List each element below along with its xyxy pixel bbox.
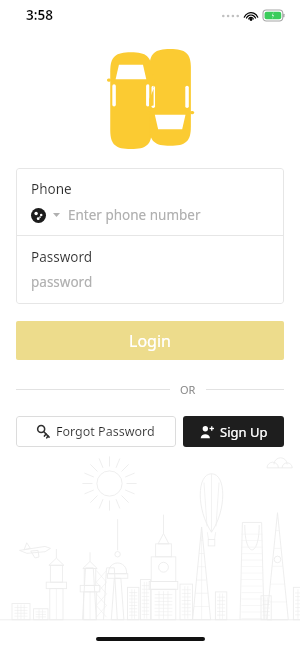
staticText: 3:58 xyxy=(26,6,53,24)
staticText: password xyxy=(31,273,93,291)
staticText: Enter phone number xyxy=(68,206,201,224)
button[interactable]: Password xyxy=(16,236,284,304)
staticText: Phone xyxy=(31,180,72,198)
staticText: Login xyxy=(129,330,171,352)
button[interactable]: Phone xyxy=(16,168,284,235)
staticText: Password xyxy=(31,248,93,266)
button[interactable]: Sign Up xyxy=(183,416,284,447)
button[interactable]: Login xyxy=(16,321,284,360)
staticText: Sign Up xyxy=(220,423,268,441)
staticText: OR xyxy=(180,382,196,397)
staticText: Forgot Password xyxy=(56,423,155,440)
button[interactable]: Forgot Password xyxy=(16,416,176,447)
